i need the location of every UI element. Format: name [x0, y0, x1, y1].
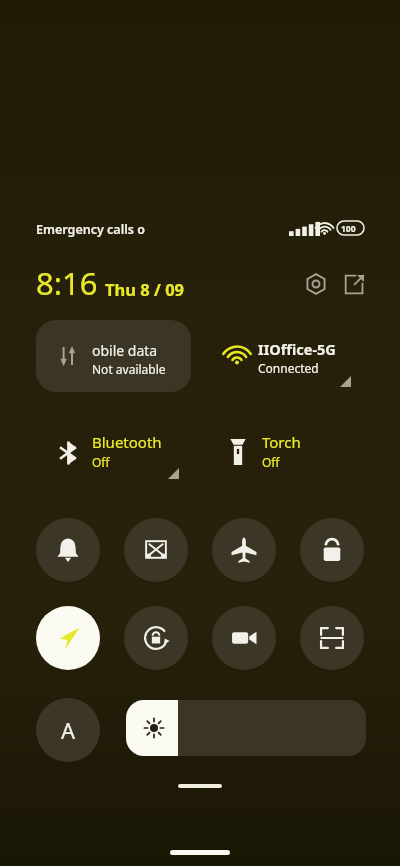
staticText: 8:16 — [36, 262, 98, 304]
button[interactable]: Scan code — [300, 606, 364, 670]
staticText: obile data — [92, 341, 158, 360]
staticText: Off — [92, 454, 110, 470]
button[interactable]: Settings — [298, 266, 334, 302]
button[interactable]: Notifications — [36, 518, 100, 582]
button[interactable]: Airplane mode — [212, 518, 276, 582]
staticText: Torch — [262, 432, 301, 452]
button[interactable]: Drag handle — [178, 784, 222, 788]
button[interactable]: Location — [36, 606, 100, 670]
button[interactable]: Auto rotate — [124, 606, 188, 670]
staticText: Bluetooth — [92, 432, 162, 452]
button[interactable]: Torch — [206, 420, 366, 486]
button[interactable]: Cast — [124, 518, 188, 582]
button[interactable]: Bluetooth — [36, 420, 201, 486]
staticText: Connected — [258, 360, 319, 376]
staticText: Emergency calls o — [36, 221, 145, 238]
button[interactable]: IIOffice-5G — [206, 320, 366, 392]
staticText: Thu 8 / 09 — [105, 278, 185, 300]
staticText: IIOffice-5G — [258, 339, 336, 359]
button[interactable]: Edit — [336, 266, 372, 302]
button[interactable]: Brightness — [126, 700, 366, 756]
staticText: Off — [262, 454, 280, 470]
button[interactable]: obile data — [36, 320, 191, 392]
staticText: Not available — [92, 361, 166, 377]
staticText: A — [61, 715, 76, 745]
button[interactable]: Screen record — [212, 606, 276, 670]
button[interactable]: Lock — [300, 518, 364, 582]
staticText: 100 — [341, 223, 356, 235]
button[interactable]: Auto brightness — [36, 698, 100, 762]
